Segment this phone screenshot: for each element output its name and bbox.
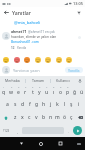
staticText: 13:05 xyxy=(73,1,83,6)
button[interactable]: Emoji xyxy=(44,56,51,63)
staticText: w xyxy=(9,89,14,96)
staticText: ğ xyxy=(73,89,77,96)
staticText: d xyxy=(21,101,25,108)
button[interactable]: 3 xyxy=(15,85,22,98)
button[interactable]: ü xyxy=(78,85,85,98)
staticText: @ahmet71 en çok xyxy=(28,30,55,34)
button[interactable]: Filter xyxy=(73,7,85,18)
staticText: 12 xyxy=(11,46,15,50)
button[interactable]: b xyxy=(40,111,47,124)
staticText: j xyxy=(50,101,52,108)
button[interactable]: Backspace xyxy=(75,111,85,124)
button[interactable]: n xyxy=(47,111,54,124)
button[interactable]: Emoji xyxy=(34,56,41,63)
button[interactable]: 1 xyxy=(0,85,8,98)
button[interactable]: Home xyxy=(35,138,46,149)
button[interactable]: h xyxy=(40,98,47,111)
staticText: o xyxy=(59,89,63,96)
button[interactable]: 8 xyxy=(50,85,57,98)
staticText: 8 xyxy=(53,86,55,89)
button[interactable]: c xyxy=(26,111,33,124)
button[interactable]: z xyxy=(11,111,19,124)
button[interactable]: Yanıtla xyxy=(65,67,83,73)
staticText: Merhaba xyxy=(5,78,20,83)
button[interactable]: Shift xyxy=(0,111,11,124)
button[interactable]: v xyxy=(33,111,40,124)
staticText: ş xyxy=(70,101,73,108)
button[interactable]: ş xyxy=(68,98,75,111)
button[interactable]: Emoji xyxy=(55,56,62,63)
button[interactable]: Kullanıcı xyxy=(51,76,75,85)
staticText: f xyxy=(29,101,31,108)
button[interactable]: Back xyxy=(0,7,12,18)
staticText: hazırdan, elimde ve yakın olan xyxy=(11,35,57,39)
staticText: Yanıtla xyxy=(68,68,80,72)
button[interactable]: Voice input xyxy=(75,76,85,85)
staticText: . xyxy=(68,129,69,133)
staticText: Yanıtınızı yazın xyxy=(13,68,40,73)
button[interactable]: Show keyboard xyxy=(73,138,84,149)
staticText: k xyxy=(56,101,59,108)
staticText: n xyxy=(49,114,53,121)
staticText: e xyxy=(17,89,20,96)
button[interactable]: j xyxy=(47,98,54,111)
button[interactable]: ğ xyxy=(71,85,78,98)
button[interactable]: ç xyxy=(68,111,75,124)
staticText: @mia_bahceli xyxy=(14,20,41,26)
staticText: 6 xyxy=(39,86,41,89)
staticText: 4 xyxy=(25,86,27,89)
button[interactable]: Send xyxy=(73,126,82,135)
button[interactable]: More options xyxy=(77,35,82,40)
button[interactable]: Back xyxy=(16,138,27,149)
button[interactable]: Emoji xyxy=(2,56,9,63)
button[interactable]: d xyxy=(19,98,26,111)
staticText: 9 xyxy=(60,86,62,89)
button[interactable]: m xyxy=(54,111,61,124)
button[interactable]: 6 xyxy=(36,85,43,98)
staticText: y xyxy=(38,89,41,96)
button[interactable]: Comma xyxy=(13,124,22,137)
button[interactable]: a xyxy=(3,98,11,111)
staticText: ?123 xyxy=(3,129,10,133)
staticText: x xyxy=(21,114,24,121)
button[interactable]: 2 xyxy=(8,85,15,98)
staticText: p xyxy=(66,89,70,96)
button[interactable]: 4 xyxy=(22,85,29,98)
button[interactable]: Tamam xyxy=(26,76,50,85)
button[interactable]: f xyxy=(26,98,33,111)
button[interactable]: l xyxy=(61,98,68,111)
button[interactable]: 7 xyxy=(43,85,50,98)
staticText: ö xyxy=(63,114,67,121)
button[interactable]: x xyxy=(19,111,26,124)
staticText: q xyxy=(2,89,6,96)
button[interactable]: g xyxy=(33,98,40,111)
staticText: v xyxy=(35,114,38,121)
staticText: ı xyxy=(53,89,55,96)
staticText: 0 xyxy=(67,86,69,89)
staticText: Bonushost01. com xyxy=(11,40,39,44)
button[interactable]: 0 xyxy=(64,85,71,98)
staticText: ahmet71 xyxy=(11,29,27,34)
button[interactable]: i xyxy=(75,98,82,111)
staticText: ü xyxy=(80,89,84,96)
button[interactable]: 9 xyxy=(57,85,64,98)
button[interactable]: ?123 xyxy=(0,124,13,137)
button[interactable]: Emoji xyxy=(23,56,30,63)
button[interactable]: Recents xyxy=(55,138,66,149)
staticText: a xyxy=(6,101,9,108)
button[interactable]: ö xyxy=(61,111,68,124)
button[interactable]: k xyxy=(54,98,61,111)
staticText: r xyxy=(24,89,27,96)
button[interactable]: s xyxy=(11,98,19,111)
button[interactable]: Emoji xyxy=(65,56,72,63)
button[interactable]: Merhaba xyxy=(0,76,25,85)
button[interactable]: Emoji xyxy=(13,56,20,63)
staticText: l xyxy=(64,101,66,108)
staticText: 5 xyxy=(32,86,34,89)
staticText: h xyxy=(42,101,46,108)
button[interactable]: 5 xyxy=(29,85,36,98)
staticText: 7 xyxy=(46,86,48,89)
